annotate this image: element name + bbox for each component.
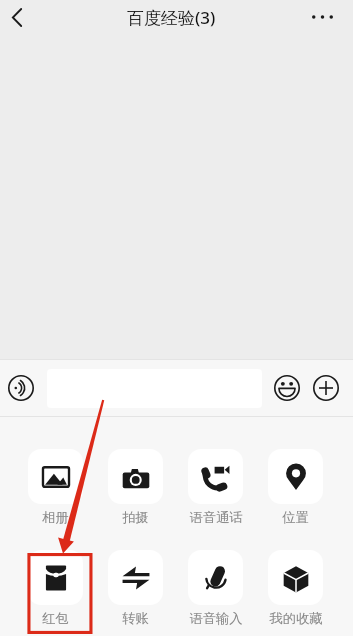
button[interactable]: 转账 (108, 550, 163, 626)
staticText: 我的收藏 (269, 610, 323, 627)
button[interactable]: 位置 (268, 449, 323, 525)
button[interactable]: Voice input (8, 375, 34, 401)
button[interactable]: 我的收藏 (268, 550, 323, 626)
staticText: 语音输入 (189, 610, 243, 627)
button[interactable]: 拍摄 (108, 449, 163, 525)
button[interactable]: 语音通话 (188, 449, 243, 525)
staticText: 拍摄 (122, 509, 149, 526)
button[interactable] (47, 369, 262, 408)
staticText: 语音通话 (189, 509, 243, 526)
button[interactable]: More options (300, 0, 345, 34)
button[interactable]: Back (0, 0, 34, 34)
staticText: 转账 (122, 610, 149, 627)
staticText: 红包 (42, 610, 69, 627)
button[interactable]: 相册 (28, 449, 83, 525)
button[interactable]: More functions (313, 375, 339, 401)
staticText: 百度经验(3) (127, 6, 216, 29)
staticText: 相册 (42, 509, 69, 526)
button[interactable]: 红包 (28, 550, 83, 626)
button[interactable]: Emoji (274, 375, 300, 401)
button[interactable]: 语音输入 (188, 550, 243, 626)
staticText: 位置 (282, 509, 309, 526)
